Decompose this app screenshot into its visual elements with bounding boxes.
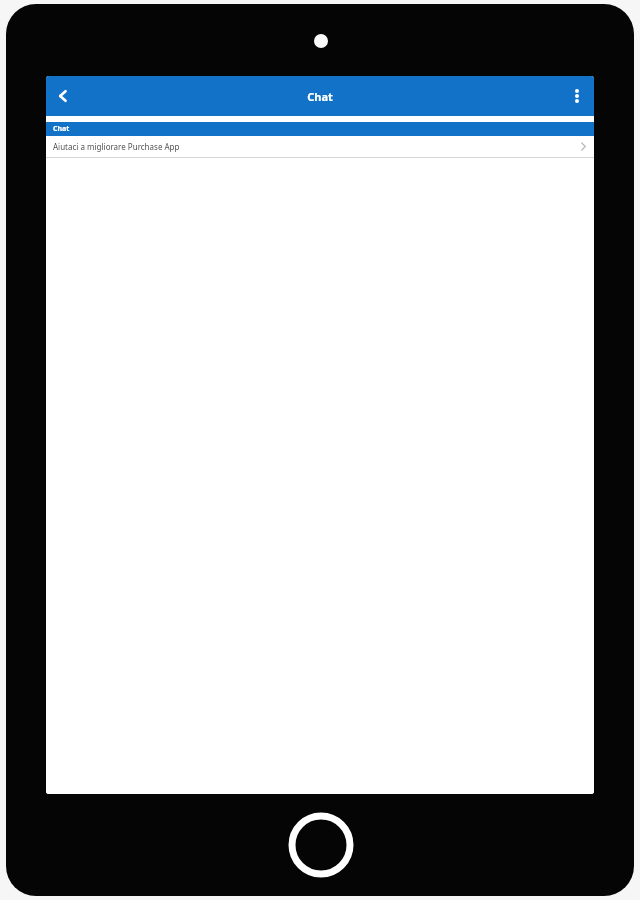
button[interactable]: Home — [288, 812, 354, 878]
staticText: Chat — [307, 89, 333, 104]
staticText: Aiutaci a migliorare Purchase App — [53, 141, 180, 152]
staticText: Chat — [53, 124, 70, 134]
button[interactable]: Back — [46, 76, 80, 116]
button[interactable]: More options — [560, 76, 594, 116]
button[interactable]: Aiutaci a migliorare Purchase App — [46, 136, 594, 157]
